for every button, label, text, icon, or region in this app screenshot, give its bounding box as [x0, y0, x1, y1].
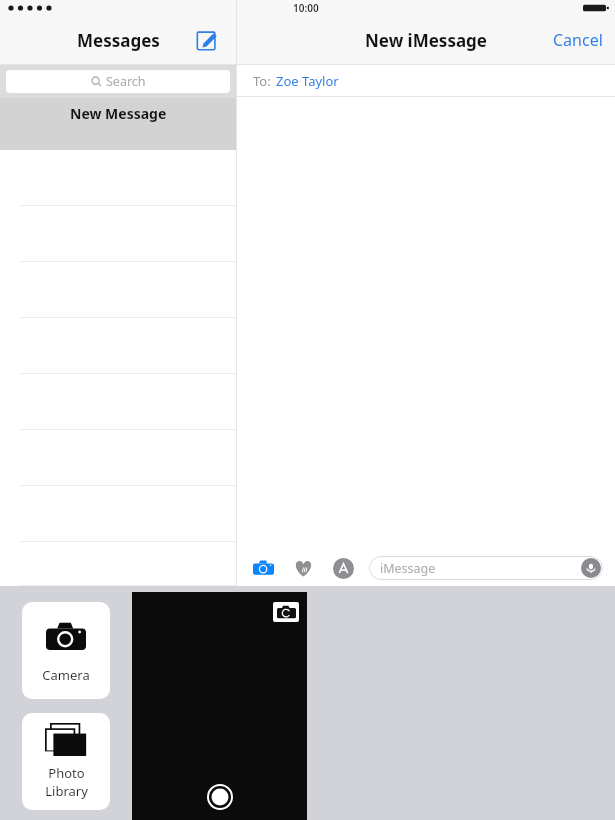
staticText: New iMessage — [365, 29, 488, 52]
button[interactable]: Search — [6, 70, 230, 93]
button[interactable]: New Message — [0, 98, 236, 150]
button[interactable]: Take photo — [207, 784, 233, 810]
other: Dictate — [581, 558, 601, 578]
staticText: Zoe Taylor — [276, 72, 339, 90]
staticText: 10:00 — [293, 1, 319, 15]
staticText: Photo — [48, 764, 85, 782]
staticText: Search — [106, 73, 146, 90]
staticText: To: — [253, 72, 271, 90]
button[interactable]: iMessage — [369, 556, 603, 580]
button[interactable]: Camera — [251, 556, 275, 580]
button[interactable]: Digital Touch — [291, 556, 315, 580]
button[interactable]: Flip camera — [132, 592, 307, 820]
button[interactable]: Zoe Taylor — [276, 72, 339, 90]
staticText: Cancel — [553, 29, 603, 51]
button[interactable]: Cancel — [553, 29, 603, 51]
button[interactable]: Flip camera — [273, 602, 299, 622]
staticText: New Message — [70, 104, 167, 123]
button[interactable]: Compose new message — [190, 23, 224, 57]
staticText: iMessage — [380, 560, 436, 577]
button[interactable]: App Store — [331, 556, 355, 580]
button[interactable]: Camera — [22, 602, 110, 699]
staticText: Library — [45, 782, 88, 800]
button[interactable]: Photo — [22, 713, 110, 810]
staticText: Messages — [77, 29, 160, 52]
staticText: Camera — [42, 666, 90, 684]
